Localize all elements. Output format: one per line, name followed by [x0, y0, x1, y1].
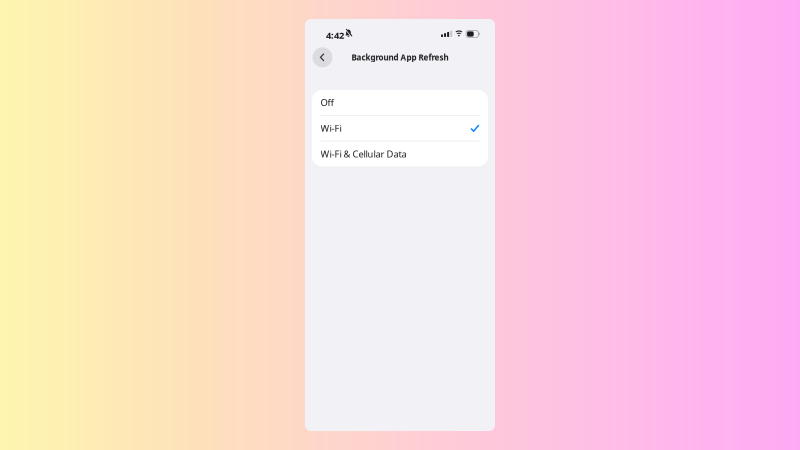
button[interactable]: Back [312, 47, 332, 67]
staticText: Wi-Fi [320, 122, 341, 134]
staticText: Wi-Fi & Cellular Data [320, 148, 406, 160]
staticText: 4:42 [326, 29, 344, 41]
button[interactable]: Wi-Fi [312, 116, 488, 141]
staticText: Background App Refresh [351, 52, 448, 63]
staticText: Off [320, 96, 333, 109]
button[interactable]: Wi-Fi & Cellular Data [312, 141, 488, 166]
button[interactable]: Off [312, 90, 488, 115]
